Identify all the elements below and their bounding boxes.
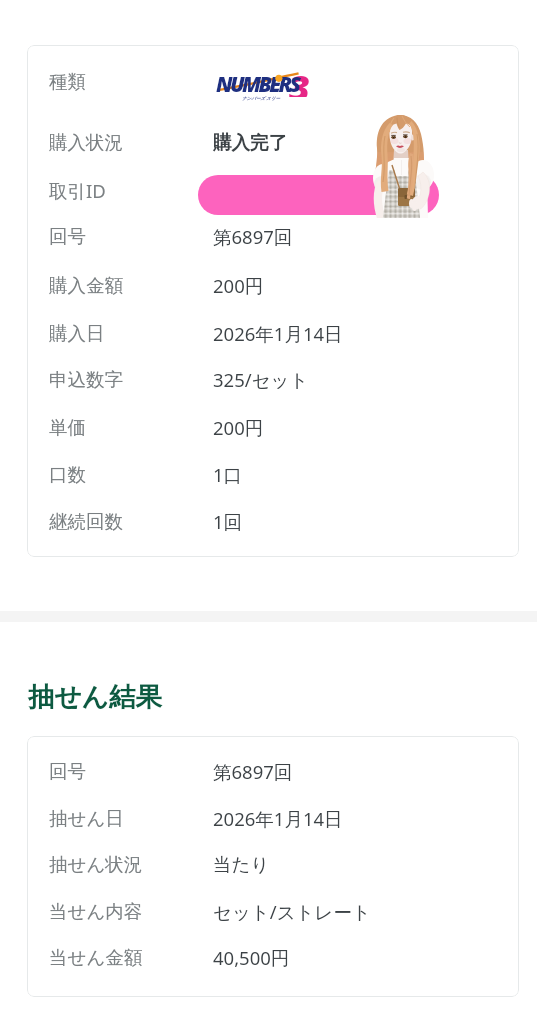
staticText: ナンバーズ スリー bbox=[242, 95, 280, 101]
staticText: 第6897回 bbox=[213, 224, 293, 249]
staticText: 購入完了 bbox=[213, 131, 287, 154]
button[interactable]: 当せん内容 bbox=[49, 897, 497, 925]
staticText: 当せん金額 bbox=[49, 946, 143, 969]
staticText: 第6897回 bbox=[213, 759, 293, 784]
staticText: 40,500円 bbox=[213, 945, 290, 970]
button[interactable]: 抽せん状況 bbox=[49, 850, 497, 878]
button[interactable]: 種類 bbox=[27, 45, 519, 557]
button[interactable]: 購入金額 bbox=[49, 271, 497, 299]
button[interactable]: 回号 bbox=[49, 757, 497, 785]
button[interactable]: 回号 bbox=[27, 736, 519, 997]
staticText: 購入状況 bbox=[49, 131, 123, 154]
button[interactable]: 回号 bbox=[49, 222, 497, 250]
staticText: 抽せん日 bbox=[49, 807, 124, 830]
staticText: セット/ストレート bbox=[213, 899, 371, 924]
staticText: 抽せん結果 bbox=[28, 680, 162, 713]
button[interactable]: 取引ID bbox=[49, 176, 497, 204]
button[interactable]: 単価 bbox=[49, 413, 497, 441]
staticText: 当せん内容 bbox=[49, 900, 143, 923]
staticText: 3 bbox=[289, 63, 310, 97]
button[interactable]: 購入日 bbox=[49, 319, 497, 347]
button[interactable]: 継続回数 bbox=[49, 507, 497, 535]
staticText: 購入日 bbox=[49, 322, 105, 345]
button[interactable]: 種類 bbox=[49, 67, 497, 95]
staticText: 200円 bbox=[213, 273, 264, 298]
staticText: 当たり bbox=[213, 853, 270, 876]
button[interactable]: 申込数字 bbox=[49, 365, 497, 393]
staticText: 325/セット bbox=[213, 367, 309, 392]
staticText: 申込数字 bbox=[49, 368, 123, 391]
staticText: 2026年1月14日 bbox=[213, 321, 343, 346]
staticText: 継続回数 bbox=[49, 510, 123, 533]
staticText: 単価 bbox=[49, 416, 86, 439]
staticText: 1口 bbox=[213, 462, 243, 487]
staticText: 抽せん状況 bbox=[49, 853, 143, 876]
staticText: NUMBERS bbox=[216, 70, 299, 99]
staticText: 200円 bbox=[213, 415, 264, 440]
button[interactable]: 当せん金額 bbox=[49, 943, 497, 971]
staticText: 種類 bbox=[49, 70, 86, 93]
staticText: 購入金額 bbox=[49, 274, 123, 297]
staticText: 取引ID bbox=[49, 178, 106, 203]
button[interactable]: 抽せん日 bbox=[49, 804, 497, 832]
staticText: 2026年1月14日 bbox=[213, 806, 343, 831]
button[interactable]: 口数 bbox=[49, 460, 497, 488]
staticText: 回号 bbox=[49, 225, 86, 248]
staticText: 回号 bbox=[49, 760, 86, 783]
staticText: 口数 bbox=[49, 463, 86, 486]
button[interactable]: 購入状況 bbox=[49, 128, 497, 156]
staticText: 1回 bbox=[213, 509, 243, 534]
